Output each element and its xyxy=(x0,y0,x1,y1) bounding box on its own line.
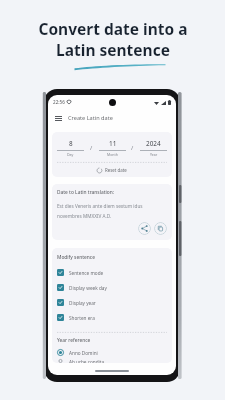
button[interactable]: Reset date xyxy=(57,163,167,177)
staticText: Est dies Veneris ante diem sextum idus xyxy=(57,203,143,209)
staticText: Sentence mode xyxy=(69,270,104,276)
button[interactable]: Display week day xyxy=(57,280,167,295)
staticText: Day xyxy=(67,152,74,157)
staticText: / xyxy=(131,144,134,152)
staticText: Anno Domini xyxy=(69,350,98,356)
staticText: Latin sentence xyxy=(56,39,170,60)
button[interactable]: Copy xyxy=(154,222,167,235)
staticText: Year xyxy=(150,152,158,157)
staticText: Convert date into a xyxy=(38,18,188,39)
staticText: novembres MMXXIV A.D. xyxy=(57,213,112,219)
button[interactable]: Shorten era xyxy=(57,310,167,325)
button[interactable]: Open navigation menu xyxy=(52,112,64,124)
button[interactable]: Sentence mode xyxy=(57,265,167,280)
staticText: Shorten era xyxy=(69,315,95,321)
button[interactable]: Ab urbe condita xyxy=(57,359,167,363)
staticText: Reset date xyxy=(105,167,127,173)
staticText: 11 xyxy=(109,139,117,148)
staticText: Date to Latin translation: xyxy=(57,189,115,196)
staticText: / xyxy=(90,144,93,152)
staticText: Month xyxy=(107,152,118,157)
button[interactable]: Share xyxy=(138,222,151,235)
staticText: 22:56 xyxy=(53,99,65,105)
button[interactable]: Display year xyxy=(57,295,167,310)
staticText: 8 xyxy=(69,139,73,148)
staticText: Display year xyxy=(69,300,96,306)
staticText: Year reference xyxy=(57,337,91,344)
staticText: Display week day xyxy=(69,285,107,291)
button[interactable]: Anno Domini xyxy=(57,346,167,359)
staticText: 2024 xyxy=(146,139,161,148)
staticText: Create Latin date xyxy=(68,114,113,122)
staticText: Modify sentence xyxy=(57,254,95,261)
staticText: Ab urbe condita xyxy=(69,359,105,363)
